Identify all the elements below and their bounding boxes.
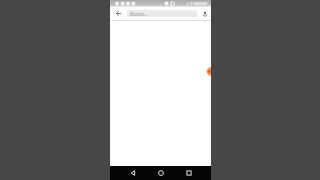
button[interactable]	[123, 166, 143, 180]
button[interactable]	[114, 9, 122, 17]
button[interactable]	[179, 166, 199, 180]
button[interactable]: Buscar...	[127, 10, 197, 17]
button[interactable]	[151, 166, 171, 180]
staticText: Buscar...	[130, 11, 148, 17]
button[interactable]	[200, 9, 209, 18]
